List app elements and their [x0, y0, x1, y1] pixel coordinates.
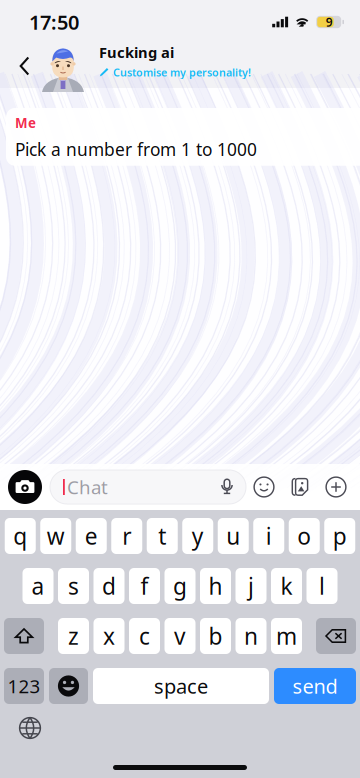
- staticText: v: [174, 621, 186, 651]
- staticText: z: [68, 621, 79, 651]
- button[interactable]: Customise my personality!: [99, 65, 251, 79]
- button[interactable]: x: [93, 618, 124, 654]
- staticText: i: [266, 521, 272, 551]
- staticText: h: [208, 571, 222, 601]
- button[interactable]: t: [147, 518, 178, 554]
- button[interactable]: z: [58, 618, 89, 654]
- staticText: send: [292, 673, 337, 699]
- button[interactable]: Delete: [316, 618, 356, 654]
- button[interactable]: Camera: [8, 470, 42, 504]
- button[interactable]: f: [129, 568, 160, 604]
- staticText: x: [103, 621, 115, 651]
- staticText: Fucking ai: [99, 43, 174, 62]
- button[interactable]: v: [164, 618, 195, 654]
- button[interactable]: Emoji: [246, 467, 282, 507]
- button[interactable]: s: [58, 568, 89, 604]
- button[interactable]: space: [93, 668, 269, 704]
- staticText: y: [192, 521, 204, 551]
- staticText: n: [244, 621, 258, 651]
- button[interactable]: r: [111, 518, 142, 554]
- button[interactable]: u: [218, 518, 249, 554]
- button[interactable]: b: [200, 618, 231, 654]
- staticText: q: [13, 521, 27, 551]
- button[interactable]: y: [182, 518, 213, 554]
- staticText: Customise my personality!: [113, 65, 251, 79]
- button[interactable]: c: [129, 618, 160, 654]
- button[interactable]: j: [235, 568, 266, 604]
- staticText: Pick a number from 1 to 1000: [15, 138, 257, 161]
- staticText: p: [333, 521, 347, 551]
- staticText: space: [154, 673, 208, 699]
- staticText: t: [158, 521, 166, 551]
- staticText: a: [31, 571, 44, 601]
- staticText: d: [102, 571, 116, 601]
- button[interactable]: Shift: [4, 618, 44, 654]
- button[interactable]: g: [164, 568, 195, 604]
- staticText: c: [139, 621, 150, 651]
- button[interactable]: More: [318, 467, 354, 507]
- button[interactable]: o: [289, 518, 320, 554]
- staticText: s: [68, 571, 79, 601]
- button[interactable]: i: [253, 518, 284, 554]
- staticText: j: [248, 571, 254, 601]
- button[interactable]: send: [274, 668, 356, 704]
- staticText: Me: [15, 114, 36, 132]
- staticText: l: [319, 571, 325, 601]
- button[interactable]: d: [93, 568, 124, 604]
- staticText: o: [297, 521, 311, 551]
- button[interactable]: 123: [4, 668, 44, 704]
- staticText: f: [140, 571, 148, 601]
- button[interactable]: Chat: [50, 470, 246, 504]
- staticText: b: [208, 621, 222, 651]
- button[interactable]: q: [5, 518, 36, 554]
- button[interactable]: m: [271, 618, 302, 654]
- staticText: 17:50: [29, 9, 79, 35]
- staticText: w: [47, 521, 65, 551]
- staticText: u: [226, 521, 240, 551]
- button[interactable]: Switch keyboard: [8, 712, 52, 744]
- staticText: 123: [7, 674, 40, 698]
- staticText: k: [280, 571, 292, 601]
- button[interactable]: k: [271, 568, 302, 604]
- button[interactable]: p: [324, 518, 355, 554]
- staticText: Chat: [67, 475, 108, 499]
- staticText: e: [85, 521, 98, 551]
- staticText: g: [173, 571, 187, 601]
- button[interactable]: Stickers: [282, 467, 318, 507]
- staticText: m: [276, 621, 297, 651]
- button[interactable]: w: [40, 518, 71, 554]
- button[interactable]: n: [235, 618, 266, 654]
- button[interactable]: Emoji: [49, 668, 88, 704]
- staticText: 9: [326, 14, 333, 30]
- button[interactable]: a: [22, 568, 53, 604]
- button[interactable]: Back: [10, 42, 40, 90]
- button[interactable]: h: [200, 568, 231, 604]
- button[interactable]: e: [76, 518, 107, 554]
- staticText: r: [122, 521, 131, 551]
- button[interactable]: l: [306, 568, 337, 604]
